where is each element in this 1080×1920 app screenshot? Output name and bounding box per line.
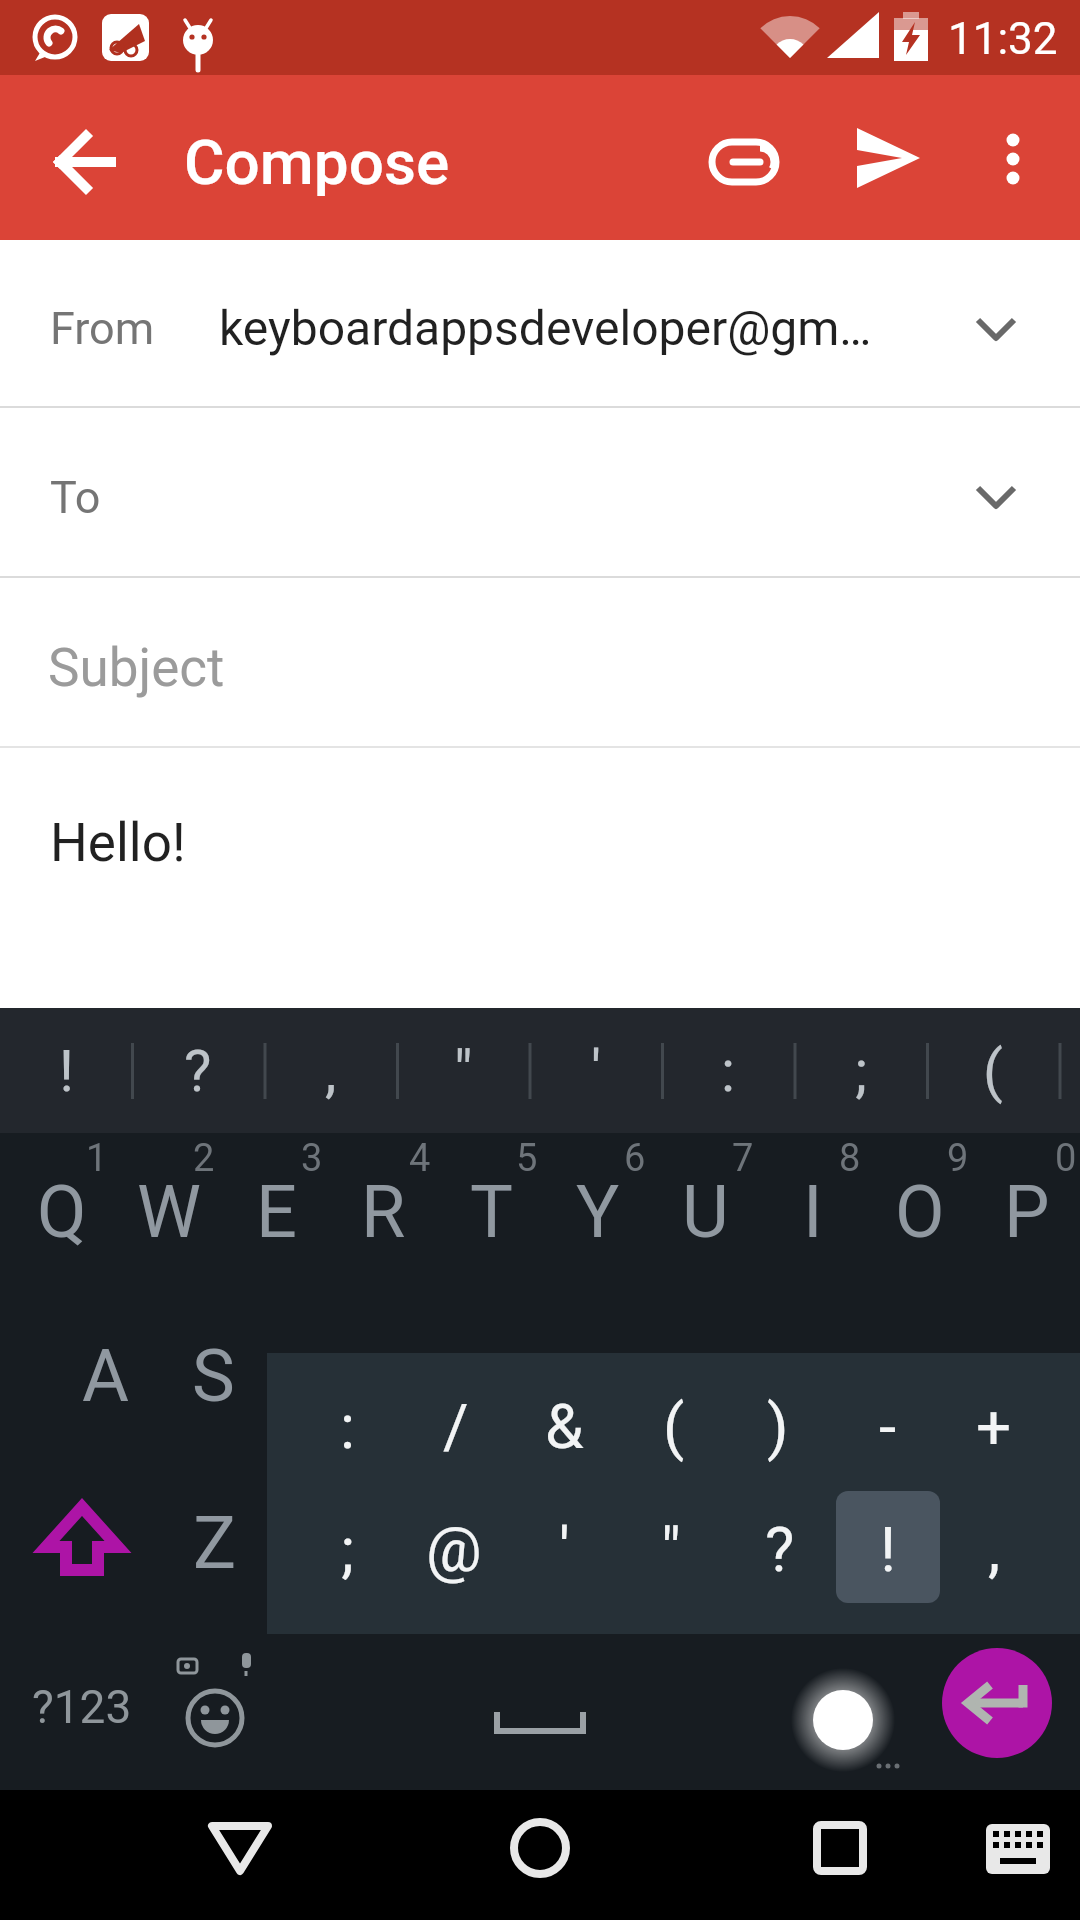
button[interactable]: ' xyxy=(514,1484,614,1614)
button[interactable]: - xyxy=(838,1361,938,1491)
staticText: 4 xyxy=(409,1136,431,1181)
staticText: - xyxy=(879,1390,897,1463)
staticText: ? xyxy=(184,1037,212,1105)
button[interactable]: , xyxy=(944,1484,1044,1614)
staticText: 5 xyxy=(516,1136,538,1181)
staticText: U xyxy=(682,1170,729,1254)
button[interactable]: @ xyxy=(404,1484,504,1614)
staticText: R xyxy=(361,1170,406,1254)
button[interactable]: : xyxy=(298,1361,398,1491)
button[interactable]: ' xyxy=(536,1008,656,1133)
button[interactable]: ! xyxy=(838,1484,938,1614)
staticText: keyboardappsdeveloper@gm… xyxy=(219,300,872,356)
button[interactable]: ) xyxy=(728,1361,828,1491)
button[interactable]: Y xyxy=(546,1152,650,1272)
button[interactable]: A xyxy=(53,1316,157,1436)
button[interactable]: P xyxy=(975,1152,1079,1272)
staticText: ; xyxy=(341,1513,355,1586)
button[interactable]: O xyxy=(868,1152,972,1272)
staticText: E xyxy=(256,1170,297,1254)
button[interactable]: R xyxy=(331,1152,435,1272)
staticText: / xyxy=(443,1390,469,1463)
staticText: ? xyxy=(765,1513,795,1586)
staticText: 6 xyxy=(624,1136,646,1181)
staticText: ( xyxy=(663,1390,685,1463)
button[interactable]: ?123 xyxy=(12,1652,152,1762)
staticText: ! xyxy=(880,1513,896,1586)
button[interactable]: ? xyxy=(138,1008,258,1133)
staticText: ' xyxy=(591,1037,602,1105)
staticText: " xyxy=(661,1513,681,1586)
button[interactable] xyxy=(0,408,1080,577)
staticText: ) xyxy=(767,1390,789,1463)
button[interactable] xyxy=(780,1800,900,1910)
button[interactable]: " xyxy=(403,1008,523,1133)
button[interactable]: Z xyxy=(163,1483,267,1603)
staticText: ?123 xyxy=(32,1680,132,1734)
button[interactable] xyxy=(942,1648,1052,1758)
button[interactable]: S xyxy=(161,1316,265,1436)
button[interactable]: U xyxy=(653,1152,757,1272)
staticText: I xyxy=(803,1170,823,1254)
staticText: 11:32 xyxy=(948,13,1058,65)
button[interactable]: Q xyxy=(10,1152,114,1272)
staticText: : xyxy=(340,1390,356,1463)
button[interactable] xyxy=(0,578,1080,746)
button[interactable]: & xyxy=(514,1361,614,1491)
button[interactable] xyxy=(330,1655,750,1765)
staticText: Subject xyxy=(48,637,225,699)
button[interactable]: I xyxy=(761,1152,865,1272)
staticText: 1 xyxy=(86,1136,108,1181)
button[interactable]: ; xyxy=(298,1484,398,1614)
staticText: & xyxy=(545,1390,584,1463)
button[interactable]: ? xyxy=(730,1484,830,1614)
button[interactable] xyxy=(836,1491,940,1603)
button[interactable]: E xyxy=(224,1152,328,1272)
staticText: " xyxy=(454,1037,473,1105)
button[interactable] xyxy=(480,1800,600,1910)
staticText: W xyxy=(137,1170,201,1254)
button[interactable] xyxy=(35,112,135,212)
button[interactable]: : xyxy=(668,1008,788,1133)
button[interactable]: " xyxy=(621,1484,721,1614)
staticText: 8 xyxy=(839,1136,861,1181)
staticText: + xyxy=(976,1390,1012,1463)
button[interactable]: ( xyxy=(933,1008,1053,1133)
staticText: A xyxy=(82,1334,129,1418)
staticText: ( xyxy=(983,1037,1003,1105)
button[interactable] xyxy=(35,1495,135,1595)
staticText: Compose xyxy=(184,126,450,199)
button[interactable] xyxy=(963,112,1063,212)
button[interactable] xyxy=(180,1800,300,1910)
button[interactable]: / xyxy=(406,1361,506,1491)
button[interactable] xyxy=(0,748,1080,1008)
button[interactable] xyxy=(960,1800,1070,1910)
staticText: 2 xyxy=(193,1136,215,1181)
staticText: Z xyxy=(193,1501,237,1585)
button[interactable]: , xyxy=(271,1008,391,1133)
button[interactable] xyxy=(790,1665,900,1775)
staticText: @ xyxy=(426,1513,482,1586)
staticText: Y xyxy=(576,1170,620,1254)
button[interactable]: ; xyxy=(801,1008,921,1133)
staticText: 3 xyxy=(301,1136,323,1181)
staticText: ! xyxy=(59,1037,74,1105)
staticText: , xyxy=(325,1037,337,1105)
staticText: O xyxy=(895,1170,945,1254)
button[interactable] xyxy=(160,1655,270,1765)
button[interactable] xyxy=(838,112,938,212)
button[interactable]: ( xyxy=(624,1361,724,1491)
staticText: ' xyxy=(559,1513,570,1586)
staticText: : xyxy=(721,1037,736,1105)
button[interactable]: + xyxy=(944,1361,1044,1491)
staticText: 0 xyxy=(1055,1136,1077,1181)
button[interactable] xyxy=(694,112,794,212)
staticText: P xyxy=(1004,1170,1050,1254)
staticText: Hello! xyxy=(50,812,186,874)
button[interactable] xyxy=(0,240,1080,407)
staticText: 9 xyxy=(947,1136,969,1181)
button[interactable]: ! xyxy=(6,1008,126,1133)
button[interactable]: T xyxy=(439,1152,543,1272)
staticText: 7 xyxy=(732,1136,754,1181)
button[interactable]: W xyxy=(117,1152,221,1272)
